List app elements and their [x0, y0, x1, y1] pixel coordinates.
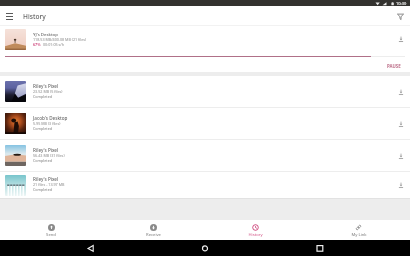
staticText: PAUSE — [387, 63, 401, 69]
button[interactable]: Download — [395, 150, 407, 162]
button[interactable]: Receive — [102, 220, 204, 240]
staticText: Riley's Pixel — [33, 176, 59, 182]
button[interactable]: Download — [395, 86, 407, 98]
staticText: Completed — [33, 126, 52, 131]
staticText: Completed — [33, 158, 52, 163]
button[interactable]: Riley's Pixel — [0, 76, 410, 107]
staticText: 67% — [33, 42, 41, 47]
button[interactable]: Menu — [0, 7, 18, 25]
button[interactable]: YJ's Desktop — [0, 26, 410, 72]
button[interactable]: My Link — [307, 220, 410, 240]
button[interactable]: Download — [395, 33, 407, 45]
staticText: 23.52 MB (5 files) — [33, 89, 63, 94]
button[interactable]: Download — [395, 179, 407, 191]
staticText: Send — [46, 232, 56, 238]
staticText: Completed — [33, 94, 52, 99]
button[interactable]: PAUSE — [385, 61, 403, 69]
staticText: 5.95 MB (3 files) — [33, 121, 61, 126]
staticText: 00:01:05 s/h — [43, 42, 65, 47]
staticText: YJ's Desktop — [33, 31, 58, 37]
button[interactable]: Send — [0, 220, 102, 240]
staticText: Completed — [33, 187, 52, 192]
button[interactable]: History — [204, 220, 307, 240]
button[interactable]: Riley's Pixel — [0, 140, 410, 171]
button[interactable]: Filter — [391, 7, 409, 25]
staticText: Jacob's Desktop — [33, 115, 68, 121]
staticText: My Link — [351, 232, 367, 238]
staticText: 56.43 MB (31 files) — [33, 153, 65, 158]
staticText: History — [248, 232, 263, 238]
staticText: 10:30 — [396, 1, 407, 6]
staticText: Riley's Pixel — [33, 83, 59, 89]
staticText: 118.53 MB/400.08 MB (21 files) — [33, 37, 87, 42]
button[interactable]: Download — [395, 118, 407, 130]
staticText: Receive — [146, 232, 161, 238]
staticText: History — [23, 12, 46, 21]
staticText: Riley's Pixel — [33, 147, 59, 153]
staticText: 21 files - 13.97 MB — [33, 182, 65, 187]
button[interactable]: Riley's Pixel — [0, 172, 410, 198]
button[interactable]: Jacob's Desktop — [0, 108, 410, 139]
